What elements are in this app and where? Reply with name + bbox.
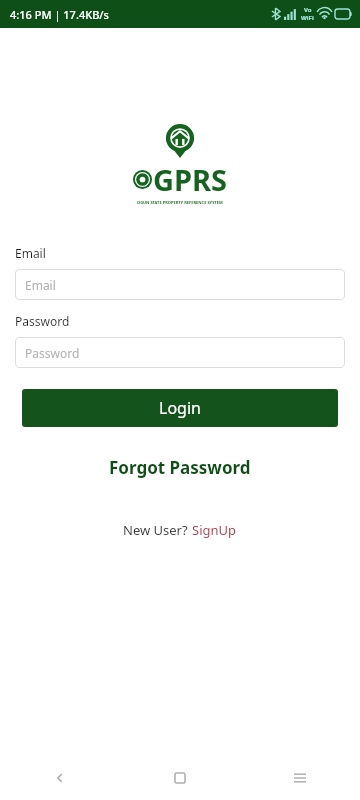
staticText: Forgot Password [109,456,251,479]
button[interactable]: Recent apps [240,756,360,800]
staticText: Password [15,313,70,329]
staticText: SignUp [192,521,237,539]
staticText: 4:16 PM | 17.4KB/s [10,7,109,22]
button[interactable]: Password [15,337,345,368]
button[interactable]: Home [120,756,240,800]
staticText: GPRS [153,160,228,199]
button[interactable]: Forgot Password [0,456,360,479]
staticText: WiFi [301,14,314,22]
staticText: Vo [304,6,312,14]
staticText: Email [25,277,56,293]
staticText: Password [25,345,80,361]
button[interactable]: Email [15,269,345,300]
staticText: OGUN STATE PROPERTY REFERENCE SYSTEM [137,200,223,205]
button[interactable]: Back [0,756,120,800]
staticText: New User? [123,521,192,539]
button[interactable]: Login [22,389,338,427]
staticText: Email [15,245,46,261]
button[interactable]: SignUp [192,521,237,539]
staticText: Login [159,397,201,419]
